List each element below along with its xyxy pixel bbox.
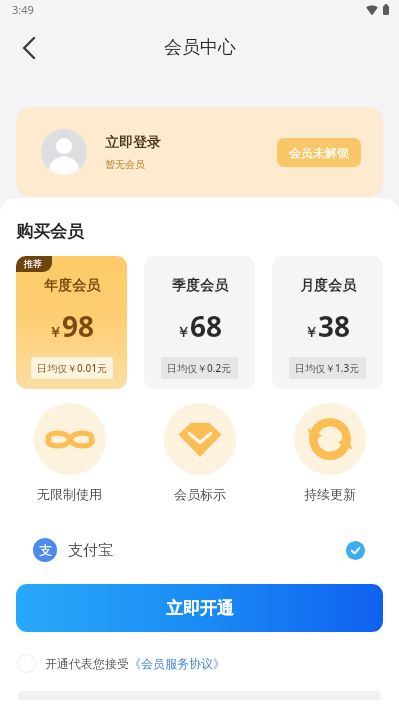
button[interactable]: 《会员服务协议》	[129, 656, 225, 671]
button[interactable]: 无限制使用	[4, 403, 135, 502]
staticText: ￥	[48, 324, 62, 342]
staticText: 开通代表您接受	[45, 656, 129, 671]
button[interactable]: 季度会员	[144, 256, 255, 389]
staticText: 月度会员	[300, 277, 356, 295]
staticText: 日均仅￥0.01元	[37, 361, 107, 375]
staticText: 立即开通	[166, 598, 234, 619]
staticText: 季度会员	[172, 277, 228, 295]
other: Selected	[346, 541, 365, 560]
staticText: 购买会员	[16, 221, 84, 242]
staticText: ￥	[176, 324, 190, 342]
staticText: 会员未解锁	[289, 145, 349, 160]
staticText: 支	[39, 542, 52, 558]
staticText: 日均仅￥0.2元	[167, 361, 232, 375]
staticText: 无限制使用	[37, 486, 102, 502]
button[interactable]: Agree to terms	[17, 654, 36, 673]
staticText: 3:49	[12, 2, 34, 17]
staticText: 会员标示	[174, 486, 226, 502]
staticText: 会员中心	[164, 36, 236, 59]
staticText: 98	[62, 307, 95, 345]
staticText: 持续更新	[304, 486, 356, 502]
button[interactable]: Back	[8, 27, 50, 69]
staticText: 日均仅￥1.3元	[295, 361, 360, 375]
staticText: 暂无会员	[105, 158, 145, 171]
button[interactable]: 会员标示	[135, 403, 265, 502]
button[interactable]: 月度会员	[272, 256, 383, 389]
staticText: 立即登录	[105, 134, 161, 152]
button[interactable]: 立即登录	[16, 107, 383, 197]
staticText: 推荐	[24, 258, 42, 269]
button[interactable]: 年度会员	[16, 256, 127, 389]
button[interactable]: 支	[0, 524, 399, 576]
staticText: ￥	[304, 324, 318, 342]
button[interactable]: 会员未解锁	[277, 138, 361, 167]
staticText: 38	[318, 307, 351, 345]
staticText: 支付宝	[68, 541, 113, 560]
staticText: 年度会员	[44, 277, 100, 295]
button[interactable]: 持续更新	[265, 403, 395, 502]
button[interactable]: 立即开通	[16, 584, 383, 632]
staticText: 68	[190, 307, 223, 345]
